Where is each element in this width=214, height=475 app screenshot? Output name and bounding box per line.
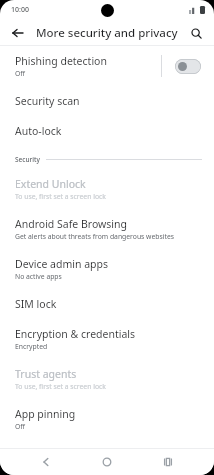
button[interactable]: Back [31, 449, 61, 475]
button[interactable]: SIM lock [0, 283, 214, 313]
button[interactable]: Search [184, 21, 208, 45]
staticText: Trust agents [15, 367, 77, 381]
staticText: Security [15, 155, 40, 164]
button[interactable]: Encryption & credentials [0, 313, 214, 353]
button[interactable]: Home [92, 449, 122, 475]
staticText: Get alerts about threats from dangerous … [15, 232, 175, 241]
button[interactable]: Auto-lock [0, 110, 214, 140]
staticText: Encryption & credentials [15, 327, 136, 341]
button[interactable]: Trust agents [0, 353, 214, 393]
button[interactable]: Back [6, 21, 30, 45]
button[interactable]: Device admin apps [0, 243, 214, 283]
staticText: More security and privacy [36, 25, 184, 41]
button[interactable]: Phishing detection toggle [171, 55, 205, 78]
staticText: Device admin apps [15, 257, 109, 271]
staticText: Auto-lock [15, 124, 62, 138]
button[interactable]: Phishing detection [0, 46, 214, 80]
button[interactable]: Security scan [0, 80, 214, 110]
staticText: No active apps [15, 272, 62, 281]
staticText: Encrypted [15, 342, 48, 351]
staticText: Android Safe Browsing [15, 217, 127, 231]
button[interactable]: Recent apps [153, 449, 183, 475]
staticText: To use, first set a screen lock [15, 382, 106, 391]
staticText: 10:00 [11, 5, 29, 15]
button[interactable]: App pinning [0, 393, 214, 433]
staticText: To use, first set a screen lock [15, 192, 106, 201]
staticText: Off [15, 422, 25, 431]
staticText: SIM lock [15, 297, 57, 311]
staticText: App pinning [15, 407, 76, 421]
button[interactable]: Android Safe Browsing [0, 203, 214, 243]
staticText: Phishing detection [15, 54, 107, 68]
staticText: Security scan [15, 94, 80, 108]
button[interactable]: Extend Unlock [0, 166, 214, 203]
staticText: Extend Unlock [15, 177, 86, 191]
staticText: Off [15, 69, 25, 78]
